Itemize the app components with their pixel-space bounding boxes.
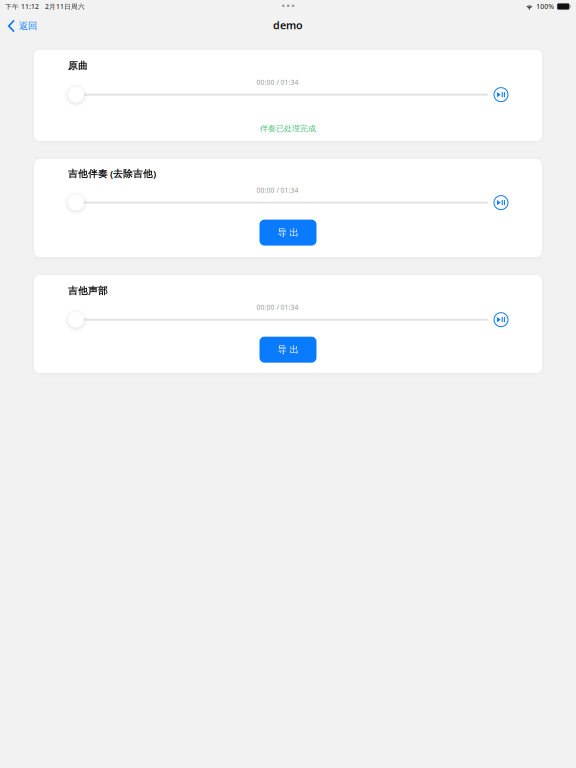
button[interactable]: 导 出 <box>259 220 316 246</box>
staticText: 导 出 <box>277 344 298 355</box>
staticText: 原曲 <box>68 60 88 72</box>
staticText: 伴奏已处理完成 <box>260 124 316 133</box>
staticText: 吉他声部 <box>68 285 108 297</box>
staticText: 吉他伴奏 (去除吉他) <box>68 167 156 180</box>
staticText: 100% <box>536 2 554 11</box>
staticText: 00:00 / 01:34 <box>256 186 298 195</box>
button[interactable]: Play or pause <box>494 88 508 102</box>
button[interactable]: 导 出 <box>259 337 316 363</box>
staticText: 下午 11:12 2月11日周六 <box>5 2 85 11</box>
button[interactable]: Play or pause <box>494 196 508 210</box>
button[interactable]: 返回 <box>8 16 37 34</box>
staticText: 00:00 / 01:34 <box>256 78 298 87</box>
staticText: 返回 <box>19 20 37 32</box>
staticText: 导 出 <box>277 227 298 238</box>
button[interactable]: Play or pause <box>494 313 508 327</box>
staticText: demo <box>273 18 303 32</box>
staticText: 00:00 / 01:34 <box>256 303 298 312</box>
